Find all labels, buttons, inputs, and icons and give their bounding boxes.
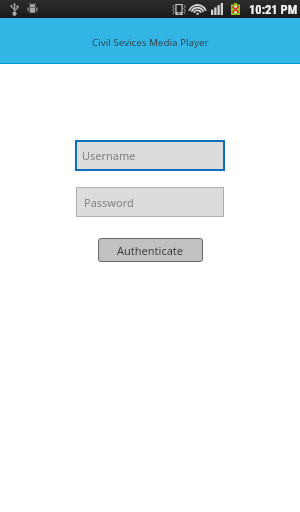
other: Mobile signal full — [211, 3, 223, 15]
button[interactable]: Username — [75, 140, 225, 171]
staticText: Password — [84, 195, 134, 210]
other: Wi-Fi signal full — [190, 3, 205, 15]
staticText: Civil Sevices Media Player — [92, 36, 209, 49]
other: USB debugging enabled — [27, 3, 38, 14]
other: Battery error — [231, 3, 240, 15]
button[interactable]: Authenticate — [98, 238, 203, 262]
other: Ringer on vibrate — [171, 4, 187, 15]
staticText: Authenticate — [117, 243, 184, 258]
button[interactable]: Password — [76, 187, 224, 217]
staticText: 10:21 PM — [249, 2, 298, 17]
other: USB connected — [10, 3, 19, 16]
staticText: Username — [82, 148, 136, 163]
